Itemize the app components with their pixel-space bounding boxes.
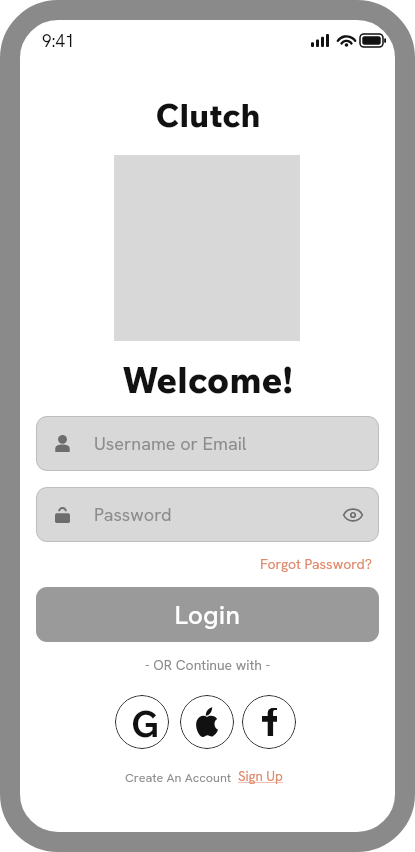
button[interactable]: Sign in with Facebook: [242, 695, 296, 749]
button[interactable]: Forgot Password?: [260, 555, 372, 573]
staticText: - OR Continue with -: [145, 656, 271, 674]
staticText: Password: [94, 503, 172, 526]
button[interactable]: Username or Email: [36, 416, 379, 471]
button[interactable]: Sign Up: [238, 768, 283, 785]
staticText: Login: [174, 599, 241, 631]
button[interactable]: Sign in with Apple: [180, 695, 234, 749]
staticText: Clutch: [155, 94, 261, 136]
button[interactable]: Show password: [340, 502, 366, 528]
staticText: G: [131, 701, 160, 746]
staticText: Username or Email: [94, 432, 247, 455]
staticText: Create An Account: [125, 769, 232, 785]
button[interactable]: Login: [36, 587, 379, 642]
staticText: Welcome!: [122, 357, 293, 402]
button[interactable]: Sign in with Google: [115, 695, 169, 749]
button[interactable]: Password: [36, 487, 379, 542]
staticText: 9:41: [42, 30, 75, 52]
